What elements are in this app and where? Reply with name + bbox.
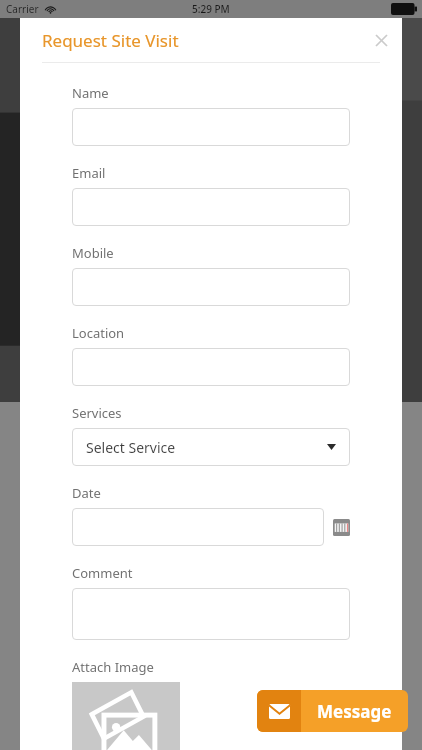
staticText: Message xyxy=(317,700,392,723)
button[interactable] xyxy=(72,348,350,386)
button[interactable]: Attach image xyxy=(72,682,180,750)
staticText: Comment xyxy=(72,564,133,582)
button[interactable] xyxy=(72,268,350,306)
staticText: Services xyxy=(72,404,122,422)
staticText: Date xyxy=(72,484,101,502)
staticText: Location xyxy=(72,324,125,342)
staticText: Carrier xyxy=(6,2,39,16)
staticText: Request Site Visit xyxy=(42,29,179,52)
staticText: Attach Image xyxy=(72,658,154,676)
button[interactable] xyxy=(72,508,324,546)
button[interactable]: Close xyxy=(366,25,396,55)
button[interactable] xyxy=(72,188,350,226)
staticText: Name xyxy=(72,84,109,102)
button[interactable] xyxy=(72,108,350,146)
staticText: Email xyxy=(72,164,106,182)
staticText: Mobile xyxy=(72,244,114,262)
button[interactable] xyxy=(72,588,350,640)
button[interactable]: Select Service xyxy=(72,428,350,466)
staticText: Select Service xyxy=(86,438,176,457)
button[interactable]: Message xyxy=(257,690,408,732)
staticText: 5:29 PM xyxy=(192,2,230,16)
button[interactable]: Pick date xyxy=(333,519,350,536)
